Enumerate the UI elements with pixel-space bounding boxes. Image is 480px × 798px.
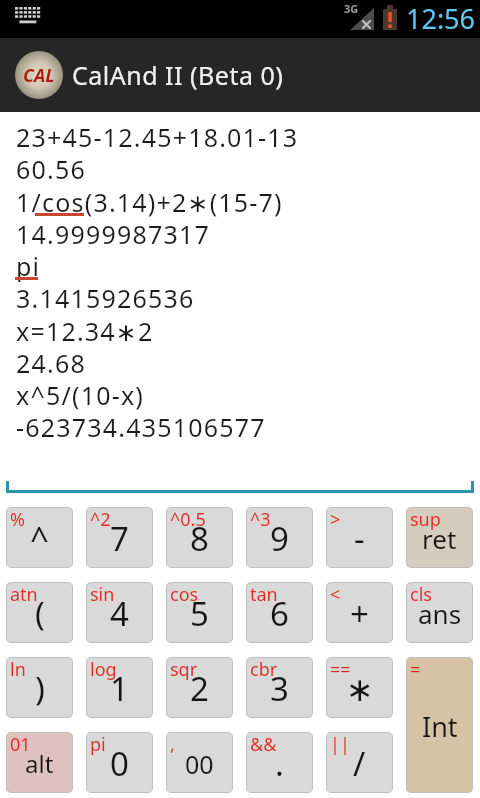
button[interactable]: atn — [6, 582, 73, 643]
staticText: ans — [418, 596, 462, 631]
staticText: . — [275, 741, 284, 786]
staticText: 3G — [344, 1, 359, 16]
staticText: alt — [25, 747, 54, 780]
staticText: 6 — [270, 591, 289, 636]
button[interactable]: < — [326, 582, 393, 643]
staticText: == — [330, 657, 351, 682]
staticText: 3 — [270, 666, 289, 711]
button[interactable]: 01 — [6, 732, 73, 793]
staticText: pi — [90, 732, 106, 757]
staticText: sin — [90, 582, 115, 607]
staticText: 4 — [110, 591, 129, 636]
button[interactable]: > — [326, 507, 393, 568]
staticText: 9 — [270, 516, 289, 561]
staticText: 0 — [110, 741, 129, 786]
staticText: % — [10, 507, 25, 532]
staticText: = — [410, 657, 421, 682]
button[interactable]: cos — [166, 582, 233, 643]
staticText: && — [250, 732, 277, 757]
staticText: ln — [10, 657, 26, 682]
staticText: CAL — [23, 63, 55, 88]
staticText: cbr — [250, 657, 278, 682]
staticText: Int — [422, 708, 458, 745]
staticText: 2 — [190, 666, 209, 711]
staticText: < — [330, 582, 341, 607]
button[interactable]: % — [6, 507, 73, 568]
staticText: ^ — [30, 516, 49, 561]
staticText: / — [353, 741, 366, 786]
button[interactable]: && — [246, 732, 313, 793]
staticText: 7 — [110, 516, 129, 561]
button[interactable]: pi — [86, 732, 153, 793]
staticText: 00 — [185, 747, 214, 781]
staticText: ^3 — [250, 507, 271, 532]
staticText: ∗ — [346, 670, 374, 708]
staticText: cls — [410, 582, 432, 607]
button[interactable]: ^3 — [246, 507, 313, 568]
button[interactable]: || — [326, 732, 393, 793]
staticText: + — [350, 591, 369, 636]
button[interactable]: sin — [86, 582, 153, 643]
staticText: ^0.5 — [170, 507, 206, 532]
staticText: sqr — [170, 657, 198, 682]
button[interactable]: log — [86, 657, 153, 718]
button[interactable]: ln — [6, 657, 73, 718]
staticText: 8 — [190, 516, 209, 561]
staticText: log — [90, 657, 117, 682]
staticText: 01 — [10, 732, 31, 757]
staticText: atn — [10, 582, 38, 607]
staticText: - — [354, 516, 365, 561]
button[interactable]: sqr — [166, 657, 233, 718]
staticText: CalAnd II (Beta 0) — [72, 58, 284, 92]
staticText: , — [170, 732, 175, 757]
staticText: sup — [410, 507, 441, 532]
staticText: 23+45-12.45+18.01-13 60.56 1/cos(3.14)+2… — [16, 120, 299, 445]
button[interactable]: , — [166, 732, 233, 793]
staticText: 1 — [110, 666, 129, 711]
staticText: || — [330, 732, 350, 757]
staticText: tan — [250, 582, 278, 607]
staticText: 12:56 — [406, 0, 476, 37]
button[interactable]: cbr — [246, 657, 313, 718]
staticText: ) — [35, 666, 45, 711]
button[interactable]: ^2 — [86, 507, 153, 568]
staticText: cos — [170, 582, 199, 607]
button[interactable]: tan — [246, 582, 313, 643]
staticText: ( — [35, 591, 45, 636]
staticText: 5 — [190, 591, 209, 636]
button[interactable]: sup — [406, 507, 473, 568]
button[interactable]: == — [326, 657, 393, 718]
button[interactable]: = — [406, 657, 473, 793]
staticText: ^2 — [90, 507, 111, 532]
button[interactable]: cls — [406, 582, 473, 643]
staticText: ret — [422, 521, 457, 556]
button[interactable]: ^0.5 — [166, 507, 233, 568]
staticText: > — [330, 507, 341, 532]
